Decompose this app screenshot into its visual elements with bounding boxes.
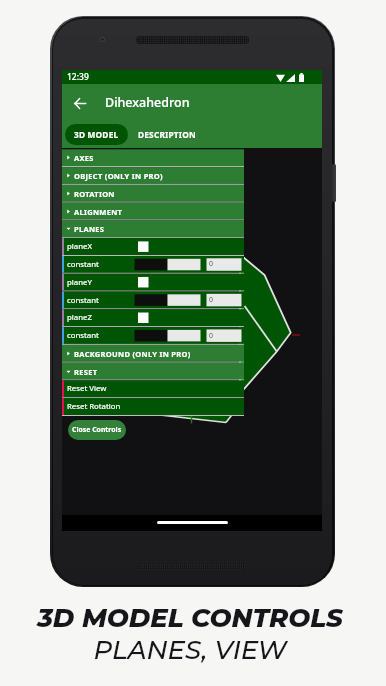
button[interactable]: planeZ: [62, 309, 244, 326]
staticText: 12:39: [67, 71, 89, 83]
staticText: Reset View: [67, 383, 107, 394]
button[interactable]: Close Controls: [68, 420, 126, 440]
staticText: ROTATION: [74, 189, 115, 199]
staticText: Reset Rotation: [67, 401, 121, 412]
staticText: PLANES, VIEW: [93, 634, 287, 666]
button[interactable]: constant: [62, 327, 244, 344]
staticText: PLANES: [74, 224, 105, 234]
staticText: planeZ: [67, 312, 92, 323]
staticText: 3D MODEL: [74, 129, 119, 140]
button[interactable]: planeX: [62, 238, 244, 255]
staticText: 3D MODEL CONTROLS: [37, 602, 343, 634]
staticText: RESET: [74, 367, 98, 377]
button[interactable]: RESET: [62, 363, 244, 380]
staticText: BACKGROUND (ONLY IN PRO): [74, 349, 191, 359]
staticText: planeY: [67, 277, 92, 288]
staticText: 0: [209, 331, 214, 341]
staticText: OBJECT (ONLY IN PRO): [74, 171, 163, 181]
button[interactable]: ALIGNMENT: [62, 203, 244, 220]
staticText: ALIGNMENT: [74, 207, 123, 217]
staticText: planeX: [67, 241, 92, 252]
button[interactable]: planeY: [62, 274, 244, 291]
staticText: 0: [209, 259, 214, 269]
button[interactable]: OBJECT (ONLY IN PRO): [62, 167, 244, 184]
staticText: DESCRIPTION: [138, 129, 196, 140]
button[interactable]: DESCRIPTION: [134, 124, 200, 145]
staticText: Dihexahedron: [105, 94, 190, 111]
button[interactable]: PLANES: [62, 220, 244, 237]
button[interactable]: constant: [62, 256, 244, 273]
button[interactable]: ROTATION: [62, 185, 244, 202]
button[interactable]: constant: [62, 292, 244, 309]
button[interactable]: Back: [67, 90, 93, 116]
staticText: 0: [209, 295, 214, 305]
staticText: constant: [67, 259, 99, 270]
button[interactable]: Reset Rotation: [62, 398, 244, 415]
button[interactable]: 3D MODEL: [65, 124, 128, 145]
staticText: constant: [67, 330, 99, 341]
button[interactable]: Reset View: [62, 380, 244, 397]
staticText: Close Controls: [72, 425, 122, 434]
button[interactable]: AXES: [62, 149, 244, 166]
staticText: constant: [67, 295, 99, 306]
button[interactable]: Power button: [332, 164, 336, 202]
button[interactable]: BACKGROUND (ONLY IN PRO): [62, 345, 244, 362]
staticText: AXES: [74, 153, 94, 163]
